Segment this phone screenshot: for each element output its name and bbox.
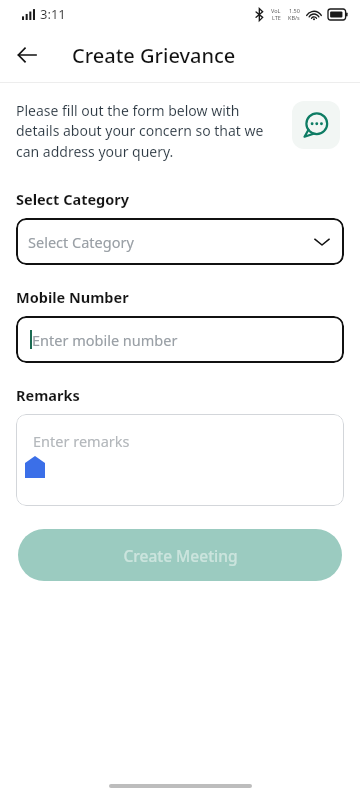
staticText: Create Meeting [123,545,238,566]
staticText: VoL [271,7,281,14]
button[interactable]: Select Category [16,218,344,265]
staticText: Enter mobile number [32,330,178,350]
button[interactable]: Create Meeting [18,529,342,581]
staticText: 1.50 [289,7,300,14]
staticText: KB/s [288,14,300,21]
button[interactable]: Back [8,36,46,74]
button[interactable]: Enter mobile number [16,316,344,363]
staticText: Remarks [16,385,80,405]
staticText: LTE [272,14,281,21]
staticText: Create Grievance [72,42,236,69]
staticText: Enter remarks [33,431,130,451]
button[interactable]: Enter remarks [16,414,344,506]
staticText: 3:11 [40,5,66,23]
button[interactable]: Chat support [292,101,340,149]
staticText: Please fill out the form below with deta… [16,101,284,162]
staticText: Mobile Number [16,287,129,307]
staticText: Select Category [16,189,130,209]
staticText: Select Category [28,232,314,252]
